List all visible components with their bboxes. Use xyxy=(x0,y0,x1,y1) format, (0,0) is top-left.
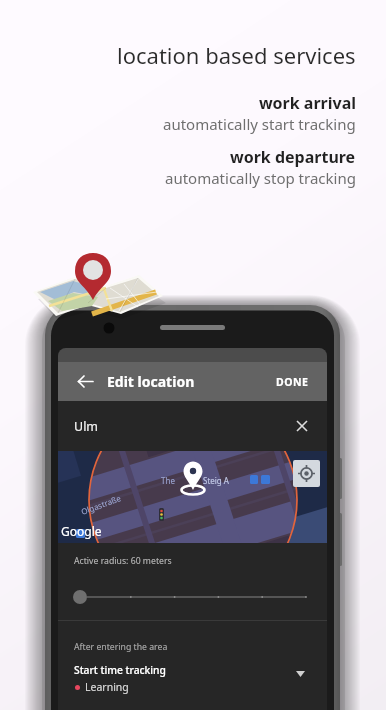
staticText: location based services xyxy=(117,40,356,70)
staticText: Active radius: 60 meters xyxy=(74,555,172,567)
staticText: The xyxy=(161,475,175,486)
staticText: work departure xyxy=(230,146,356,168)
staticText: automatically stop tracking xyxy=(165,168,356,188)
staticText: Google xyxy=(61,523,102,539)
button[interactable]: Clear xyxy=(290,414,314,438)
button[interactable]: Ulm xyxy=(58,401,327,451)
button[interactable]: My location xyxy=(293,460,320,487)
staticText: Ulm xyxy=(74,418,99,435)
staticText: Steig A xyxy=(203,475,229,486)
staticText: automatically start tracking xyxy=(163,114,356,134)
staticText: Start time tracking xyxy=(74,663,166,677)
button[interactable]: Back xyxy=(65,362,105,401)
button[interactable]: DONE xyxy=(258,362,327,401)
staticText: Learning xyxy=(85,680,129,694)
button[interactable] xyxy=(58,567,327,620)
staticText: After entering the area xyxy=(74,641,168,653)
staticText: DONE xyxy=(276,375,309,389)
staticText: work arrival xyxy=(258,92,356,114)
button[interactable]: Start time tracking xyxy=(58,663,327,694)
staticText: Edit location xyxy=(107,372,195,391)
staticText: Olgastraße xyxy=(79,492,123,517)
